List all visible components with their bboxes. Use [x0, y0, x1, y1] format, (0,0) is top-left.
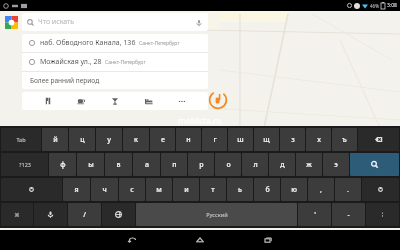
- staticText: ю: [291, 185, 297, 195]
- staticText: з: [291, 135, 295, 145]
- button[interactable]: Change language: [102, 203, 135, 226]
- staticText: 3:08: [387, 2, 397, 9]
- staticText: л: [253, 160, 258, 170]
- staticText: д: [280, 160, 285, 170]
- staticText: ?123: [19, 161, 31, 168]
- staticText: ж: [306, 160, 312, 170]
- staticText: г: [213, 135, 217, 145]
- button[interactable]: ф: [49, 153, 76, 176]
- button[interactable]: ?123: [1, 153, 48, 176]
- button[interactable]: й: [42, 128, 68, 151]
- button[interactable]: л: [242, 153, 268, 176]
- button[interactable]: Hotels: [141, 93, 157, 109]
- staticText: Санкт-Петербург: [139, 40, 180, 47]
- button[interactable]: Google Maps: [5, 16, 18, 29]
- button[interactable]: Coffee: [73, 93, 89, 109]
- button[interactable]: More: [174, 93, 190, 109]
- button[interactable]: Shift: [1, 178, 62, 201]
- staticText: .: [347, 185, 349, 195]
- button[interactable]: р: [188, 153, 214, 176]
- staticText: щ: [263, 135, 270, 145]
- staticText: Санкт-Петербург: [105, 59, 146, 66]
- staticText: п: [172, 160, 177, 170]
- staticText: у: [107, 135, 111, 145]
- staticText: х: [317, 135, 321, 145]
- button[interactable]: /: [68, 203, 101, 226]
- button[interactable]: Более ранний период: [22, 72, 208, 89]
- button[interactable]: б: [254, 178, 280, 201]
- staticText: Более ранний период: [30, 76, 100, 85]
- button[interactable]: и: [173, 178, 199, 201]
- button[interactable]: д: [269, 153, 295, 176]
- button[interactable]: ,: [308, 178, 334, 201]
- button[interactable]: у: [96, 128, 122, 151]
- staticText: ш: [237, 135, 244, 145]
- button[interactable]: с: [119, 178, 145, 201]
- button[interactable]: ч: [91, 178, 118, 201]
- button[interactable]: ⌘: [1, 203, 33, 226]
- button[interactable]: Home: [177, 230, 223, 250]
- staticText: ц: [80, 135, 85, 145]
- button[interactable]: Можайская ул., 28: [22, 53, 208, 71]
- staticText: наб. Обводного Канала, 136: [40, 38, 136, 48]
- button[interactable]: Restaurants: [40, 93, 56, 109]
- staticText: -: [347, 210, 350, 220]
- staticText: ⌘: [14, 212, 20, 218]
- staticText: с: [130, 185, 134, 195]
- staticText: 46%: [370, 3, 379, 9]
- button[interactable]: ъ: [332, 128, 357, 151]
- button[interactable]: Voice input: [34, 203, 67, 226]
- button[interactable]: ': [298, 203, 331, 226]
- button[interactable]: ш: [228, 128, 253, 151]
- button[interactable]: ы: [77, 153, 104, 176]
- button[interactable]: Backspace: [358, 128, 399, 151]
- button[interactable]: э: [323, 153, 349, 176]
- button[interactable]: ц: [69, 128, 95, 151]
- button[interactable]: м: [146, 178, 172, 201]
- button[interactable]: п: [161, 153, 187, 176]
- button[interactable]: Recent apps: [245, 230, 291, 250]
- staticText: е: [161, 135, 165, 145]
- staticText: в: [116, 160, 121, 170]
- button[interactable]: о: [215, 153, 241, 176]
- staticText: а: [145, 160, 149, 170]
- staticText: ъ: [342, 135, 347, 145]
- button[interactable]: -: [332, 203, 365, 226]
- button[interactable]: Back: [109, 230, 155, 250]
- staticText: ,: [320, 185, 322, 195]
- button[interactable]: .: [335, 178, 361, 201]
- button[interactable]: Voice search: [194, 18, 203, 27]
- button[interactable]: ь: [227, 178, 253, 201]
- staticText: н: [186, 135, 191, 145]
- button[interactable]: Shift right: [362, 178, 399, 201]
- button[interactable]: наб. Обводного Канала, 136: [22, 34, 208, 52]
- button[interactable]: к: [123, 128, 149, 151]
- button[interactable]: ю: [281, 178, 307, 201]
- staticText: т: [211, 185, 215, 195]
- staticText: ь: [238, 185, 242, 195]
- staticText: /: [83, 210, 86, 220]
- button[interactable]: в: [105, 153, 132, 176]
- button[interactable]: з: [280, 128, 305, 151]
- button[interactable]: а: [133, 153, 160, 176]
- button[interactable]: Что искать: [22, 13, 208, 31]
- button[interactable]: ж: [296, 153, 322, 176]
- button[interactable]: Search: [350, 153, 399, 176]
- button[interactable]: Tab: [1, 128, 41, 151]
- button[interactable]: More: [366, 203, 399, 226]
- button[interactable]: я: [63, 178, 90, 201]
- staticText: Что искать: [38, 17, 75, 27]
- button[interactable]: щ: [254, 128, 279, 151]
- button[interactable]: т: [200, 178, 226, 201]
- button[interactable]: е: [150, 128, 175, 151]
- button[interactable]: х: [306, 128, 331, 151]
- button[interactable]: н: [176, 128, 201, 151]
- staticText: к: [134, 135, 138, 145]
- button[interactable]: Bars: [107, 93, 123, 109]
- button[interactable]: г: [202, 128, 227, 151]
- staticText: й: [53, 135, 58, 145]
- staticText: и: [184, 185, 189, 195]
- staticText: м: [156, 185, 162, 195]
- staticText: э: [334, 160, 338, 170]
- button[interactable]: Русский: [136, 203, 297, 226]
